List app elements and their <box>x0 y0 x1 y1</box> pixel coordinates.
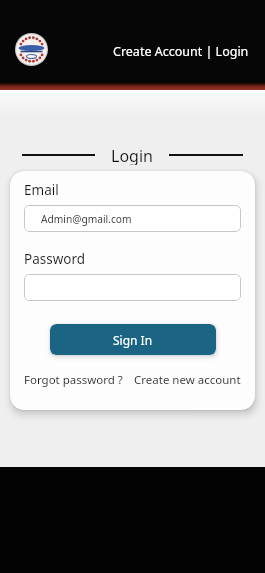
button[interactable]: Admin@gmail.com <box>24 205 241 232</box>
staticText: Sign In <box>113 332 153 348</box>
button[interactable] <box>24 274 241 301</box>
staticText: Email <box>24 181 59 199</box>
button[interactable]: Forgot password ? <box>24 372 123 388</box>
staticText: Admin@gmail.com <box>41 212 132 226</box>
button[interactable]: Create new account <box>134 372 241 388</box>
button[interactable]: Sign In <box>50 324 216 355</box>
staticText: Login <box>111 145 153 165</box>
button[interactable]: Create Account | Login <box>113 43 249 60</box>
staticText: Password <box>24 250 86 268</box>
